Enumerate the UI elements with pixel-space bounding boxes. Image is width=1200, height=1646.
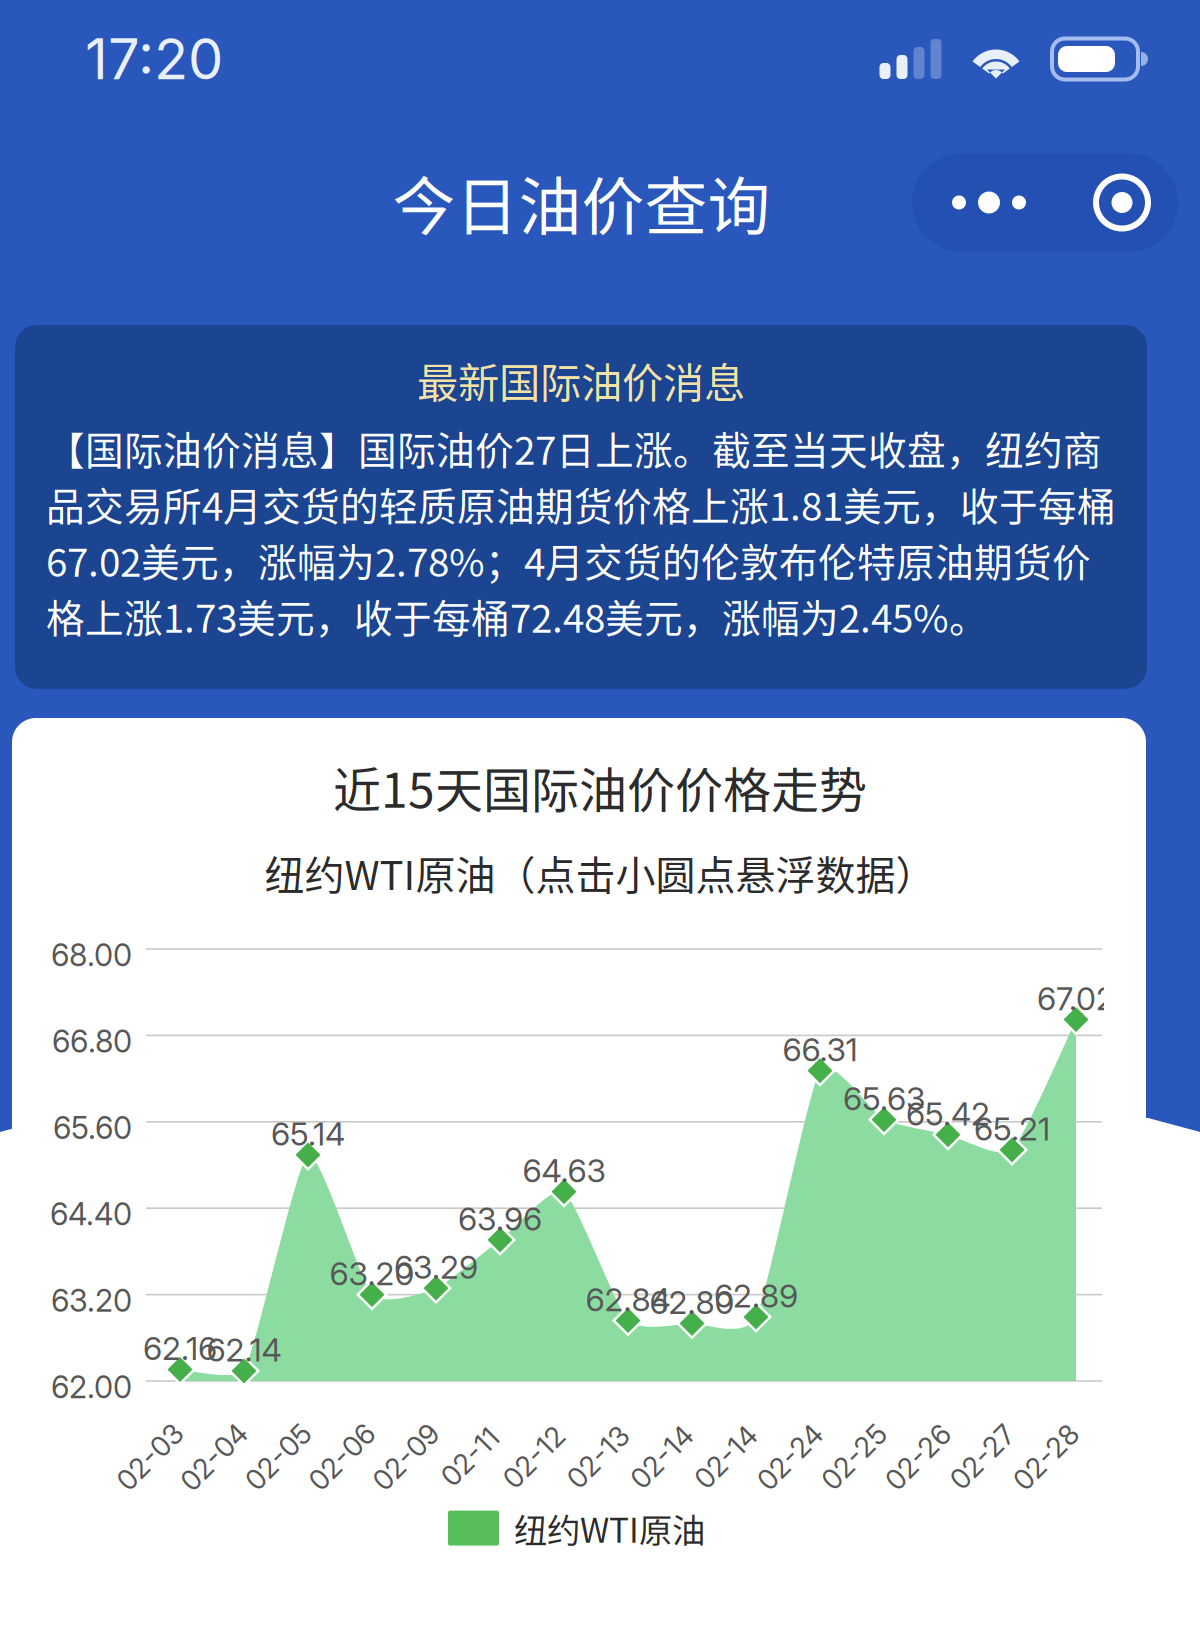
staticText: 02-03 [109,1440,190,1474]
staticText: 67.02 [1037,979,1115,1018]
staticText: 62.14 [206,1331,281,1369]
staticText: 62.89 [714,1277,798,1315]
staticText: 68.00 [51,936,132,973]
staticText: 65.14 [271,1115,345,1153]
staticText: 02-25 [814,1440,893,1474]
staticText: 近15天国际油价价格走势 [333,752,867,821]
staticText: 65.60 [53,1109,132,1146]
staticText: 02-24 [750,1440,830,1474]
staticText: 65.63 [843,1079,925,1118]
staticText: 62.84 [585,1280,670,1319]
staticText: 【国际油价消息】国际油价27日上涨。截至当天收盘，纽约商品交易所4月交货的轻质原… [46,420,1116,644]
staticText: 02-06 [301,1440,382,1474]
staticText: 最新国际油价消息 [417,350,745,410]
staticText: 66.31 [782,1030,857,1069]
staticText: 02-11 [435,1440,504,1474]
staticText: 02-28 [1006,1440,1086,1474]
staticText: 64.40 [50,1196,132,1233]
staticText: 02-04 [173,1440,255,1474]
staticText: 62.80 [649,1283,734,1322]
staticText: 62.00 [51,1368,132,1405]
staticText: 63.29 [394,1248,478,1286]
staticText: 02-14 [688,1440,764,1474]
staticText: 63.96 [458,1199,542,1238]
staticText: 纽约WTI原油（点击小圆点悬浮数据） [264,843,935,901]
staticText: 02-13 [560,1440,635,1474]
button[interactable]: 小程序菜单 [912,153,1178,252]
staticText: 02-27 [943,1440,1021,1474]
staticText: 02-09 [365,1440,446,1474]
staticText: 纽约WTI原油 [514,1504,705,1552]
staticText: 62.16 [143,1329,217,1368]
staticText: 02-14 [624,1440,700,1474]
staticText: 65.21 [974,1109,1050,1148]
staticText: 02-26 [878,1440,958,1474]
staticText: 今日油价查询 [392,157,770,247]
staticText: 02-12 [496,1440,571,1474]
staticText: 17:20 [85,25,223,93]
staticText: 63.20 [329,1254,414,1293]
staticText: 65.42 [906,1094,990,1133]
staticText: 63.20 [51,1282,132,1319]
staticText: 64.63 [522,1151,605,1190]
staticText: 66.80 [52,1023,132,1060]
staticText: 02-05 [238,1440,318,1474]
